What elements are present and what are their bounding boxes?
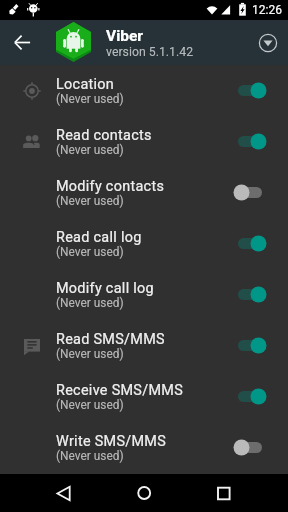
staticText: Read contacts [56,127,152,144]
button[interactable]: Read call log [0,218,288,269]
button[interactable]: Modify call log permission [232,269,288,320]
staticText: (Never used) [56,92,124,106]
staticText: (Never used) [56,143,124,157]
button[interactable]: Modify contacts [0,167,288,218]
staticText: version 5.1.1.42 [106,45,194,59]
staticText: Read SMS/MMS [56,331,165,348]
button[interactable]: Read contacts [0,116,288,167]
button[interactable]: Location [0,65,288,116]
staticText: (Never used) [56,449,124,463]
button[interactable]: Modify contacts permission [232,167,288,218]
staticText: Modify contacts [56,178,165,195]
staticText: Location [56,76,115,93]
staticText: Write SMS/MMS [56,433,167,450]
button[interactable]: Modify call log [0,269,288,320]
staticText: (Never used) [56,296,124,310]
button[interactable]: Navigate up [0,20,45,65]
staticText: Viber [106,27,143,45]
staticText: (Never used) [56,245,124,259]
button[interactable]: Read contacts permission [232,116,288,167]
button[interactable]: Receive SMS/MMS permission [232,371,288,422]
staticText: (Never used) [56,194,124,208]
button[interactable]: Write SMS/MMS [0,422,288,473]
button[interactable]: Write SMS/MMS permission [232,422,288,473]
button[interactable]: Home [108,474,180,512]
staticText: 12:26 [252,3,282,17]
button[interactable]: Read call log permission [232,218,288,269]
staticText: Receive SMS/MMS [56,382,184,399]
staticText: Read call log [56,229,142,246]
button[interactable]: Read SMS/MMS permission [232,320,288,371]
staticText: (Never used) [56,347,124,361]
staticText: (Never used) [56,398,124,412]
button[interactable]: Receive SMS/MMS [0,371,288,422]
button[interactable]: Location permission [232,65,288,116]
button[interactable]: Read SMS/MMS [0,320,288,371]
button[interactable]: Back [28,474,100,512]
button[interactable]: Recent apps [188,474,260,512]
staticText: Modify call log [56,280,154,297]
button[interactable]: Expand details [246,20,288,65]
